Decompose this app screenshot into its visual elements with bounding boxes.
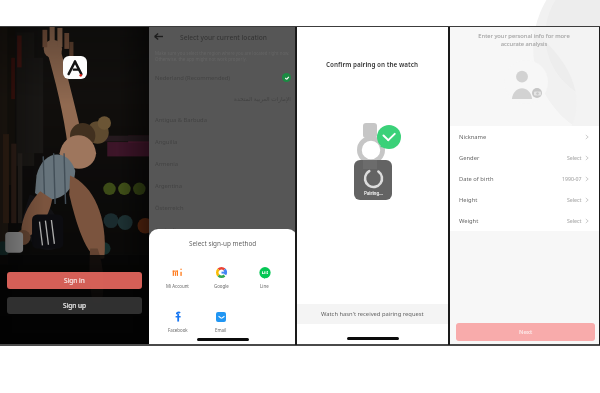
staticText: Nederland (Recommended) <box>155 74 231 82</box>
button[interactable]: Height <box>459 189 589 210</box>
staticText: Line <box>260 283 269 289</box>
staticText: Armenia <box>155 160 179 168</box>
staticText: Sign in <box>64 276 85 285</box>
staticText: Sign up <box>63 301 86 310</box>
staticText: Anguilla <box>155 138 178 146</box>
staticText: Select your current location <box>180 33 267 42</box>
staticText: Enter your personal info for more accura… <box>478 32 570 48</box>
staticText: Select <box>567 196 582 203</box>
staticText: Antigua & Barbuda <box>155 116 207 124</box>
button[interactable]: Mi Account <box>160 266 195 289</box>
staticText: Select sign-up method <box>189 239 257 248</box>
button[interactable]: Next <box>456 323 595 341</box>
staticText: الإمارات العربية المتحدة <box>234 95 291 103</box>
staticText: Österreich <box>155 204 184 212</box>
button[interactable]: Nickname <box>459 126 589 147</box>
button[interactable]: Nederland (Recommended) <box>155 67 291 88</box>
staticText: Select <box>567 154 582 161</box>
button[interactable]: Gender <box>459 147 589 168</box>
button[interactable]: Facebook <box>160 310 195 333</box>
staticText: Height <box>459 196 478 204</box>
button[interactable]: Sign up <box>7 297 142 314</box>
staticText: Argentina <box>155 182 182 190</box>
staticText: Date of birth <box>459 175 494 183</box>
staticText: Facebook <box>168 327 188 333</box>
button[interactable]: Email <box>203 310 238 333</box>
staticText: Gender <box>459 154 480 162</box>
button[interactable]: Google <box>204 266 239 289</box>
staticText: Mi Account <box>166 283 189 289</box>
button[interactable]: Australia <box>155 219 291 241</box>
staticText: Google <box>214 283 229 289</box>
button[interactable]: Change photo <box>532 88 542 98</box>
staticText: Select <box>567 217 582 224</box>
button[interactable]: Watch hasn't received pairing request <box>297 304 448 324</box>
button[interactable]: Date of birth <box>459 168 589 189</box>
button[interactable]: Line <box>247 266 282 289</box>
staticText: 1990-07 <box>562 175 582 182</box>
staticText: Email <box>215 327 227 333</box>
staticText: Confirm pairing on the watch <box>326 60 419 69</box>
staticText: Watch hasn't received pairing request <box>321 310 424 318</box>
staticText: Australia <box>155 226 179 234</box>
staticText: Next <box>519 328 533 336</box>
button[interactable]: Sign in <box>7 272 142 289</box>
staticText: Pairing... <box>364 190 383 196</box>
button[interactable]: Back <box>151 29 166 44</box>
staticText: Nickname <box>459 133 487 141</box>
button[interactable]: Weight <box>459 210 589 231</box>
staticText: Weight <box>459 217 479 225</box>
